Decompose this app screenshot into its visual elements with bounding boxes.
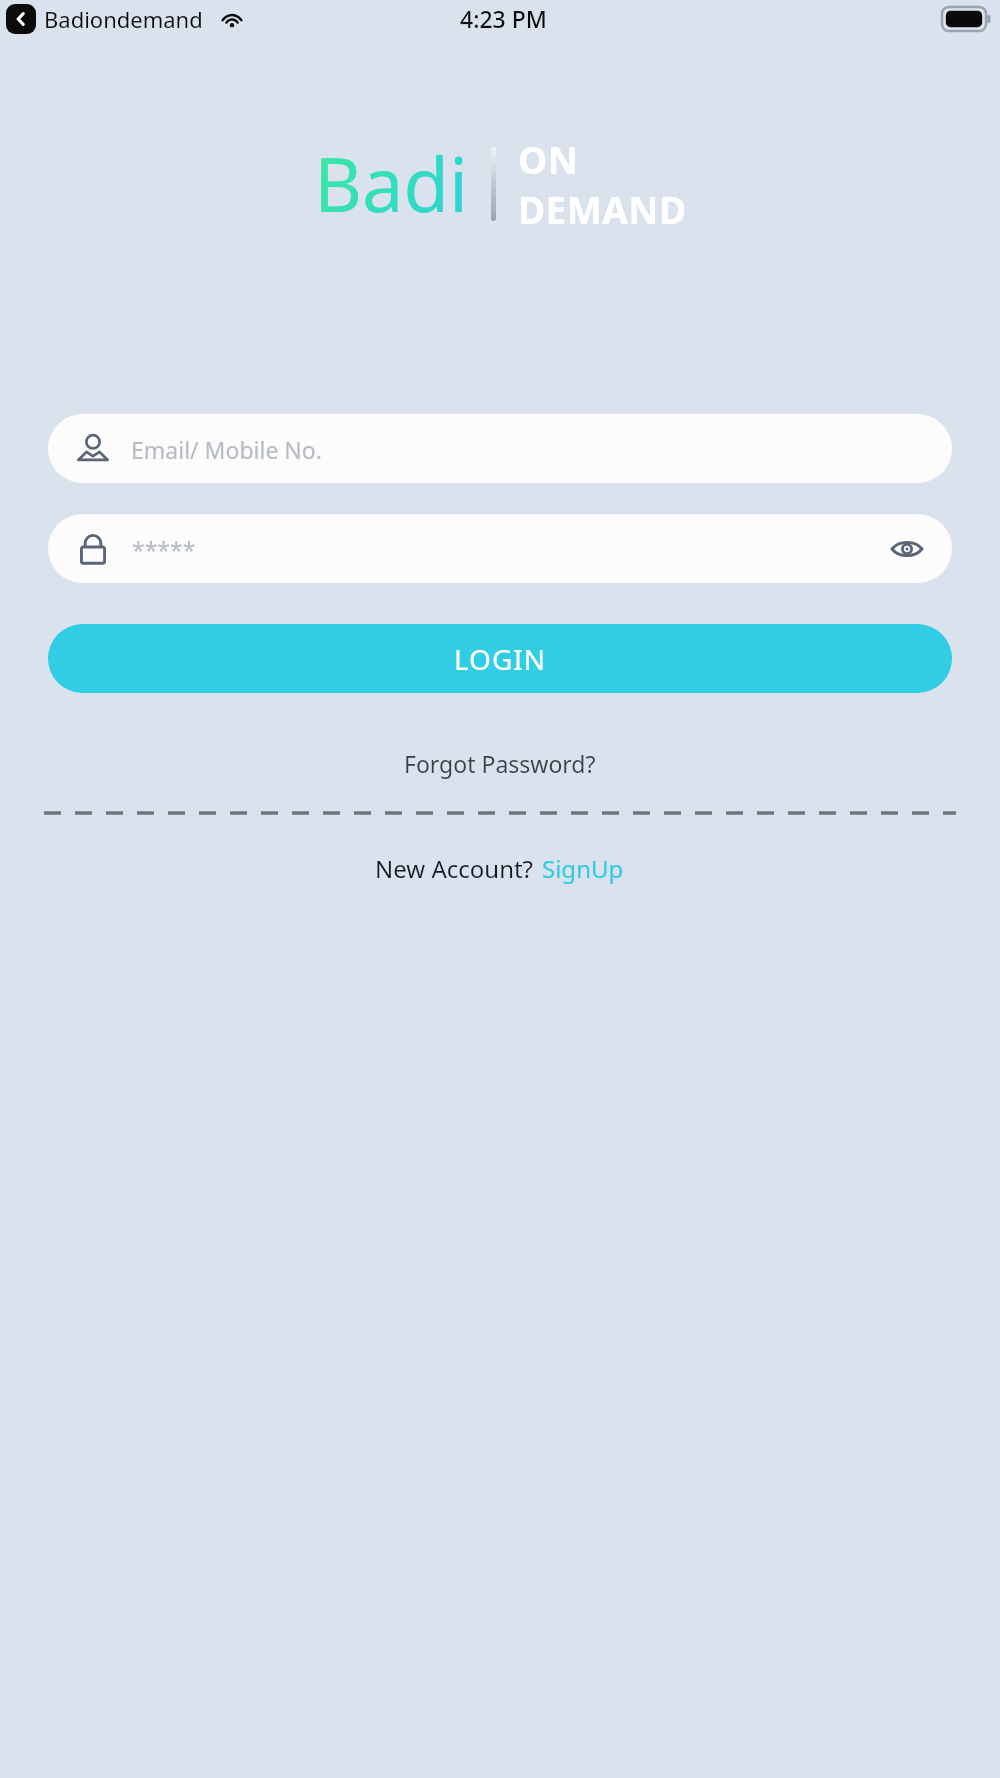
staticText: New Account? [375, 852, 540, 885]
button[interactable]: SignUp [540, 849, 626, 888]
staticText: ***** [132, 534, 196, 565]
button[interactable]: ***** [48, 514, 952, 583]
staticText: Badiondemand [44, 4, 203, 34]
button[interactable]: LOGIN [48, 624, 952, 693]
button[interactable]: Forgot Password? [392, 743, 608, 784]
button[interactable]: Back [6, 4, 36, 34]
button[interactable]: Email/ Mobile No. [48, 414, 952, 483]
staticText: SignUp [542, 852, 624, 885]
staticText: Forgot Password? [404, 748, 596, 779]
button[interactable]: Show password [886, 528, 928, 570]
staticText: LOGIN [454, 640, 547, 678]
staticText: 4:23 PM [460, 3, 547, 34]
staticText: ON [518, 134, 579, 184]
staticText: Email/ Mobile No. [131, 434, 322, 465]
staticText: Badi [314, 133, 469, 234]
staticText: DEMAND [518, 184, 687, 234]
